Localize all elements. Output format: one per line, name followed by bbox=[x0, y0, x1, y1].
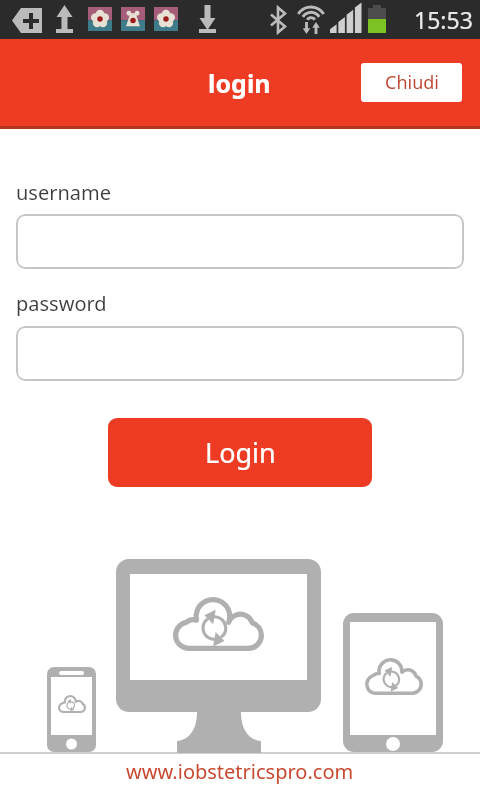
staticText: 15:53 bbox=[414, 4, 473, 35]
staticText: Login bbox=[205, 434, 276, 471]
button[interactable]: Login bbox=[108, 418, 372, 487]
staticText: username bbox=[16, 179, 112, 206]
button[interactable] bbox=[16, 326, 464, 381]
button[interactable]: Chiudi bbox=[361, 63, 462, 102]
staticText: www.iobstetricspro.com bbox=[126, 758, 354, 785]
staticText: password bbox=[16, 290, 107, 317]
button[interactable] bbox=[16, 214, 464, 269]
staticText: login bbox=[208, 66, 271, 100]
staticText: Chiudi bbox=[385, 70, 439, 95]
